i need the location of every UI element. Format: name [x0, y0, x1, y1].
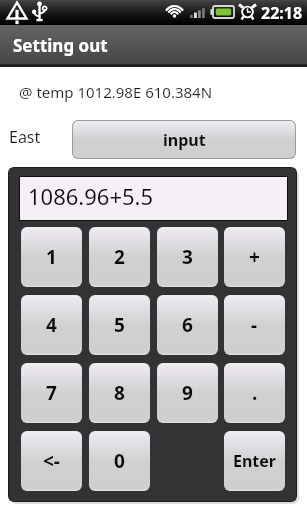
staticText: 8 [114, 380, 125, 406]
button[interactable]: input [73, 121, 295, 158]
staticText: @ temp 1012.98E 610.384N [19, 82, 213, 102]
staticText: East [9, 126, 41, 148]
button[interactable]: 7 [21, 363, 82, 423]
staticText: 6 [182, 312, 193, 338]
staticText: 1086.96+5.5 [28, 181, 154, 211]
button[interactable]: 3 [157, 227, 218, 287]
button[interactable]: Plus [224, 227, 285, 287]
staticText: + [249, 244, 260, 270]
staticText: 9 [182, 380, 193, 406]
button[interactable]: Backspace [21, 431, 82, 491]
button[interactable]: 9 [157, 363, 218, 423]
button[interactable]: 0 [89, 431, 150, 491]
staticText: - [251, 312, 258, 338]
button[interactable]: 5 [89, 295, 150, 355]
button[interactable]: 2 [89, 227, 150, 287]
button[interactable]: Enter [224, 431, 285, 491]
staticText: 7 [46, 380, 57, 406]
staticText: 2 [114, 244, 125, 270]
staticText: <- [43, 448, 60, 474]
staticText: . [252, 380, 258, 406]
staticText: Enter [233, 450, 277, 472]
staticText: 5 [114, 312, 125, 338]
button[interactable]: Minus [224, 295, 285, 355]
staticText: input [163, 129, 206, 151]
staticText: 22:18 [261, 2, 303, 24]
button[interactable]: 1 [21, 227, 82, 287]
button[interactable]: 6 [157, 295, 218, 355]
button[interactable]: 8 [89, 363, 150, 423]
staticText: 3 [182, 244, 193, 270]
button[interactable]: Decimal point [224, 363, 285, 423]
staticText: Setting out [13, 34, 108, 57]
staticText: 0 [114, 448, 125, 474]
staticText: 4 [46, 312, 57, 338]
staticText: 1 [46, 244, 57, 270]
button[interactable]: 4 [21, 295, 82, 355]
